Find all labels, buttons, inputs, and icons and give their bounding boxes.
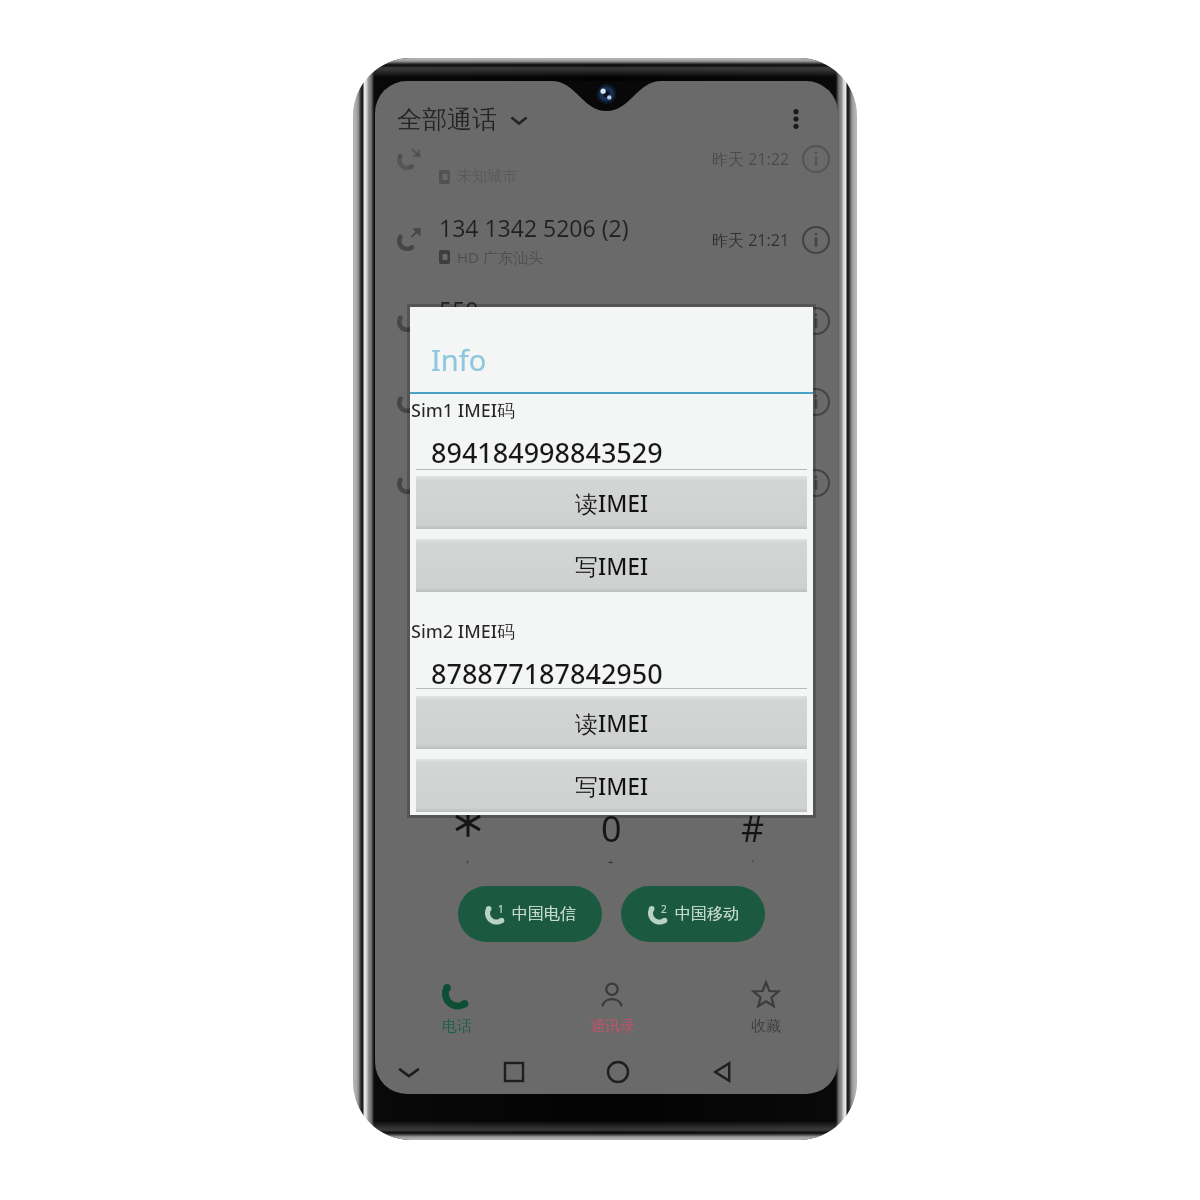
staticText: 读IMEI [575,487,649,518]
staticText: 中国电信 [512,904,576,924]
button[interactable]: Hide keyboard [392,1055,426,1089]
staticText: 550 [439,294,479,325]
button[interactable]: 读IMEI [416,476,807,529]
button[interactable]: Back [706,1055,740,1089]
staticText: 全部通话 [397,104,497,135]
button[interactable]: 电话 [392,980,522,1036]
button[interactable]: 写IMEI [416,759,807,812]
staticText: # [741,804,765,853]
button[interactable]: 全部通话 [397,104,529,135]
button[interactable]: 写IMEI [416,539,807,592]
staticText: 广东汕头 [457,410,517,429]
button[interactable]: 131 3131 3131 [397,361,836,442]
staticText: HD 广东汕头 [457,247,543,267]
button[interactable]: 0 [581,804,641,864]
button[interactable]: # [723,804,783,864]
staticText: 未知城市 [457,167,517,186]
staticText: 0 [601,804,622,853]
staticText: 昨天 21:21 [712,229,790,251]
staticText: 2 [661,902,667,916]
button[interactable]: 134 1342 5206 (2) [397,199,836,280]
staticText: 通讯录 [590,1017,635,1036]
staticText: 1 [498,902,504,916]
button[interactable]: Call details [796,220,836,260]
button[interactable]: 读IMEI [416,696,807,749]
staticText: 收藏 [751,1017,781,1036]
staticText: 写IMEI [575,550,649,581]
staticText: 中国移动 [675,904,739,924]
staticText: 894184998843529 [431,434,663,471]
button[interactable]: , [438,804,498,864]
button[interactable]: Call details [796,463,836,503]
button[interactable]: Recents [497,1055,531,1089]
staticText: 134 1342 5206 (2) [439,212,629,243]
staticText: 读IMEI [575,707,649,738]
staticText: 电话 [442,1017,472,1036]
staticText: + [607,853,615,864]
button[interactable]: Call details [796,382,836,422]
button[interactable]: 未知城市 [397,118,836,199]
staticText: 昨天 21:22 [712,148,790,170]
button[interactable]: Call details [796,139,836,179]
button[interactable]: 2 [621,886,765,942]
staticText: Info [431,340,487,379]
button[interactable]: 通讯录 [547,980,677,1036]
staticText: 131 3131 3131 [439,375,596,406]
button[interactable]: 177 7788 1122 [397,442,836,523]
staticText: Sim1 IMEI码 [411,398,516,423]
button[interactable]: 收藏 [701,980,831,1036]
staticText: , [466,848,470,864]
staticText: Sim2 IMEI码 [411,619,516,644]
button[interactable]: Home [601,1055,635,1089]
staticText: 写IMEI [575,770,649,801]
staticText: 878877187842950 [431,655,663,692]
staticText: 昨天 19:12 [712,391,790,413]
staticText: ; [751,853,755,864]
staticText: 昨天 18:05 [712,472,790,494]
button[interactable]: 550 [397,280,836,361]
staticText: 177 7788 1122 [439,456,596,487]
button[interactable]: Call details [796,301,836,341]
button[interactable]: More options [776,99,816,139]
button[interactable]: 1 [458,886,602,942]
